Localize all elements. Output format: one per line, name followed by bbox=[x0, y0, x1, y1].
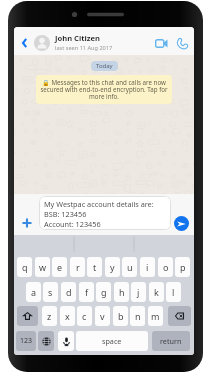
staticText: Today bbox=[96, 62, 113, 70]
button[interactable]: Dictate bbox=[58, 331, 74, 351]
button[interactable]: return bbox=[152, 331, 190, 351]
button[interactable]: 🔒 Messages to this chat and calls are no… bbox=[36, 75, 172, 104]
button[interactable]: h bbox=[114, 282, 129, 302]
staticText: 123 bbox=[20, 336, 33, 346]
button[interactable]: b bbox=[113, 306, 128, 326]
button[interactable]: i bbox=[140, 257, 155, 277]
button[interactable]: space bbox=[76, 331, 148, 351]
button[interactable]: t bbox=[87, 257, 102, 277]
button[interactable]: v bbox=[95, 306, 110, 326]
staticText: return bbox=[160, 336, 182, 346]
staticText: z bbox=[47, 310, 52, 322]
button[interactable]: e bbox=[52, 257, 67, 277]
button[interactable]: l bbox=[166, 282, 181, 302]
staticText: c bbox=[82, 310, 87, 322]
button[interactable]: Attach bbox=[18, 214, 35, 231]
staticText: v bbox=[100, 310, 105, 322]
staticText: y bbox=[110, 261, 115, 273]
button[interactable]: f bbox=[79, 282, 94, 302]
staticText: l bbox=[172, 286, 175, 298]
button[interactable]: k bbox=[149, 282, 164, 302]
button[interactable]: s bbox=[43, 282, 58, 302]
staticText: p bbox=[180, 261, 186, 273]
button[interactable]: p bbox=[175, 257, 190, 277]
staticText: e bbox=[57, 261, 63, 273]
staticText: s bbox=[48, 286, 53, 298]
staticText: space bbox=[102, 336, 122, 346]
button[interactable]: o bbox=[158, 257, 173, 277]
button[interactable]: q bbox=[17, 257, 32, 277]
button[interactable]: z bbox=[42, 306, 57, 326]
staticText: u bbox=[127, 261, 133, 273]
staticText: x bbox=[65, 310, 70, 322]
button[interactable]: Emoji bbox=[38, 331, 54, 351]
staticText: b bbox=[118, 310, 124, 322]
staticText: h bbox=[119, 286, 125, 298]
button[interactable]: Today bbox=[96, 62, 113, 70]
button[interactable]: Delete bbox=[168, 306, 191, 326]
button[interactable]: 123 bbox=[16, 331, 36, 351]
button[interactable]: c bbox=[77, 306, 92, 326]
staticText: f bbox=[85, 286, 89, 298]
button[interactable]: Back bbox=[17, 32, 31, 54]
staticText: k bbox=[154, 286, 159, 298]
button[interactable]: Video call bbox=[152, 32, 171, 54]
staticText: John Citizen bbox=[55, 33, 101, 43]
button[interactable]: d bbox=[61, 282, 76, 302]
staticText: last seen 11 Aug 2017 bbox=[55, 44, 113, 52]
staticText: r bbox=[76, 261, 80, 273]
staticText: a bbox=[31, 286, 37, 298]
button[interactable]: m bbox=[148, 306, 163, 326]
staticText: My Westpac account details are: BSB: 123… bbox=[44, 199, 154, 229]
button[interactable]: y bbox=[105, 257, 120, 277]
button[interactable]: Send bbox=[174, 216, 189, 231]
staticText: 🔒 Messages to this chat and calls are no… bbox=[40, 78, 168, 101]
button[interactable]: g bbox=[96, 282, 111, 302]
staticText: m bbox=[151, 310, 160, 322]
button[interactable]: Call bbox=[173, 32, 191, 54]
staticText: t bbox=[93, 261, 97, 273]
staticText: o bbox=[163, 261, 169, 273]
staticText: w bbox=[39, 261, 47, 273]
button[interactable]: a bbox=[26, 282, 41, 302]
staticText: j bbox=[137, 286, 140, 298]
button[interactable]: n bbox=[130, 306, 145, 326]
button[interactable]: My Westpac account details are: BSB: 123… bbox=[39, 196, 171, 230]
button[interactable]: j bbox=[131, 282, 146, 302]
button[interactable]: Shift bbox=[17, 306, 38, 326]
staticText: g bbox=[101, 286, 107, 298]
staticText: q bbox=[22, 261, 28, 273]
button[interactable]: w bbox=[35, 257, 50, 277]
button[interactable]: r bbox=[70, 257, 85, 277]
staticText: d bbox=[66, 286, 72, 298]
button[interactable]: u bbox=[122, 257, 137, 277]
button[interactable]: x bbox=[60, 306, 75, 326]
staticText: i bbox=[146, 261, 149, 273]
staticText: n bbox=[135, 310, 141, 322]
